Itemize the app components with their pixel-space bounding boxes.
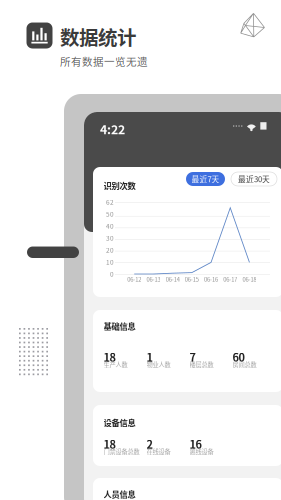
staticText: 设备信息 [104,416,136,428]
staticText: 10 [106,257,114,267]
staticText: 数据统计 [60,22,136,51]
staticText: 4:22 [100,120,125,138]
staticText: 06-18 [242,275,256,283]
staticText: 人员信息 [104,488,136,500]
staticText: 06-15 [185,275,199,283]
button[interactable]: 最近30天 [231,172,277,186]
staticText: 18 [104,436,116,452]
staticText: 物业人数 [147,360,171,369]
staticText: 06-16 [204,275,218,283]
staticText: 2 [147,436,153,452]
button[interactable]: 最近7天 [186,172,225,186]
staticText: 06-13 [146,275,160,283]
button[interactable]: Brand logo [238,11,267,40]
staticText: 在线设备 [147,447,171,456]
staticText: 0 [110,269,114,279]
staticText: 离线设备 [190,447,214,456]
staticText: 20 [106,245,114,255]
staticText: 房间总数 [233,360,257,369]
staticText: 所有数据一览无遗 [60,53,148,69]
staticText: 50 [106,209,114,219]
staticText: 06-12 [127,275,141,283]
staticText: 1 [147,349,153,365]
staticText: 楼层总数 [190,360,214,369]
staticText: 60 [233,349,245,365]
staticText: 62 [106,197,114,207]
staticText: 30 [106,233,114,243]
staticText: 06-14 [166,275,180,283]
staticText: 生产人数 [104,360,128,369]
staticText: 40 [106,221,114,231]
staticText: 门禁设备总数 [104,447,140,456]
staticText: 最近30天 [238,173,270,185]
staticText: 最近7天 [191,173,219,185]
staticText: 06-17 [223,275,237,283]
staticText: 7 [190,349,196,365]
staticText: 基础信息 [104,320,136,332]
staticText: 识别次数 [104,179,136,191]
staticText: 18 [104,349,116,365]
staticText: 16 [190,436,202,452]
